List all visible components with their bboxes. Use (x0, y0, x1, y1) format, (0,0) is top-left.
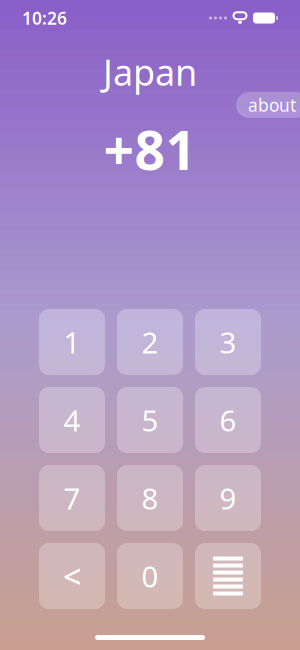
staticText: +81 (103, 114, 196, 185)
staticText: 4 (63, 400, 80, 439)
button[interactable]: 1 (39, 309, 105, 375)
staticText: 0 (141, 556, 158, 595)
staticText: < (63, 555, 81, 597)
button[interactable]: 3 (195, 309, 261, 375)
staticText: 8 (141, 478, 158, 517)
button[interactable]: 6 (195, 387, 261, 453)
staticText: 6 (219, 400, 236, 439)
staticText: about (248, 93, 296, 116)
button[interactable]: 0 (117, 543, 183, 609)
staticText: 7 (63, 478, 80, 517)
button[interactable]: Delete (39, 543, 105, 609)
staticText: 1 (63, 322, 80, 361)
button[interactable]: 2 (117, 309, 183, 375)
staticText: Japan (103, 48, 197, 96)
button[interactable]: 8 (117, 465, 183, 531)
staticText: 10:26 (22, 6, 67, 29)
button[interactable]: 7 (39, 465, 105, 531)
button[interactable]: 4 (39, 387, 105, 453)
button[interactable]: about (236, 92, 300, 118)
button[interactable]: 5 (117, 387, 183, 453)
staticText: 9 (219, 478, 236, 517)
staticText: 5 (141, 400, 158, 439)
button[interactable]: 9 (195, 465, 261, 531)
staticText: 3 (219, 322, 236, 361)
button[interactable]: Menu (195, 543, 261, 609)
staticText: 2 (141, 322, 158, 361)
